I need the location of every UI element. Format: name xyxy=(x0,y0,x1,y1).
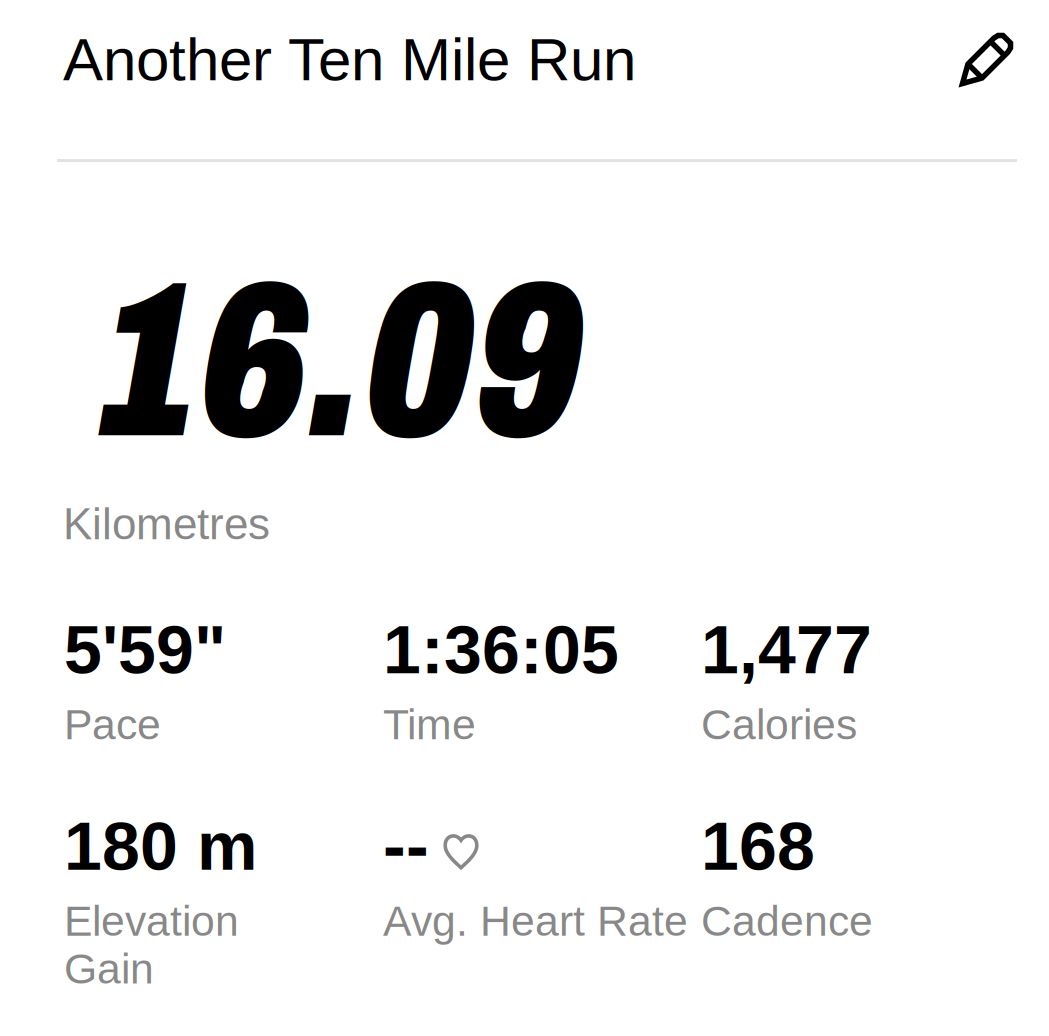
staticText: Pace xyxy=(64,700,161,748)
staticText: Avg. Heart Rate xyxy=(383,897,688,945)
staticText: 1,477 xyxy=(701,612,872,688)
staticText: 1:36:05 xyxy=(383,612,619,688)
button[interactable]: Edit xyxy=(959,32,1014,87)
staticText: Kilometres xyxy=(63,499,270,549)
staticText: -- xyxy=(383,808,429,884)
staticText: Cadence xyxy=(701,897,873,945)
staticText: 168 xyxy=(701,808,815,884)
staticText: 5'59" xyxy=(64,612,226,688)
staticText: Calories xyxy=(701,700,857,748)
staticText: Another Ten Mile Run xyxy=(63,26,636,93)
staticText: Time xyxy=(383,700,476,748)
staticText: 180 m xyxy=(64,808,257,884)
staticText: Elevation Gain xyxy=(64,897,239,992)
staticText: 16.09 xyxy=(102,242,583,481)
